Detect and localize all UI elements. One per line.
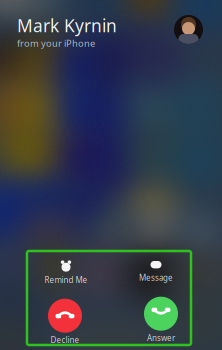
staticText: Decline — [50, 335, 79, 345]
staticText: from your iPhone — [17, 37, 95, 49]
staticText: Message — [139, 272, 173, 283]
button[interactable]: Remind Me — [28, 259, 104, 287]
staticText: Answer — [147, 333, 175, 343]
staticText: Mark Kyrnin — [17, 14, 117, 37]
button[interactable]: Decline — [35, 299, 95, 345]
staticText: Remind Me — [44, 275, 87, 285]
button[interactable]: Message — [118, 258, 194, 286]
button[interactable]: Answer — [131, 297, 191, 343]
